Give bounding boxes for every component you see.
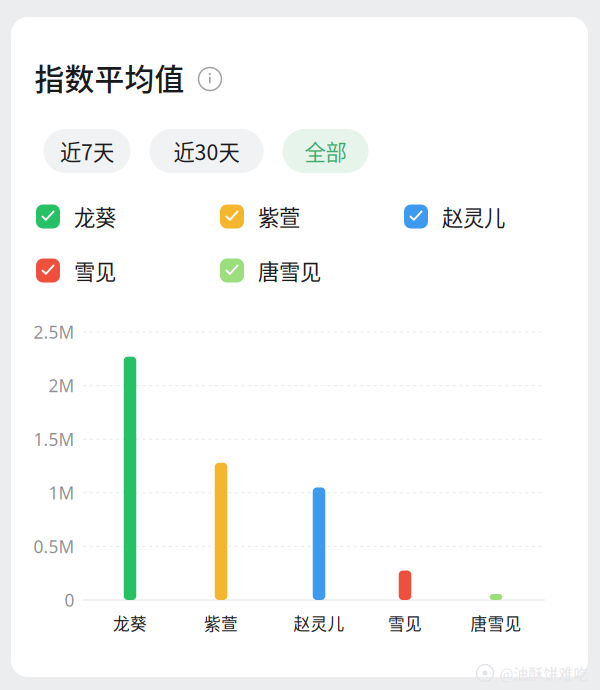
button[interactable]: 赵灵儿 [404, 203, 554, 229]
staticText: 指数平均值 [34, 55, 184, 99]
staticText: 1.5M [33, 428, 74, 451]
staticText: 唐雪见 [470, 611, 521, 635]
staticText: 赵灵儿 [442, 201, 505, 232]
staticText: 全部 [304, 136, 346, 166]
staticText: 0.5M [33, 535, 74, 558]
staticText: 紫萱 [204, 611, 238, 635]
button[interactable]: 紫萱 [220, 203, 404, 229]
staticText: 唐雪见 [258, 255, 321, 286]
staticText: 1M [48, 481, 74, 504]
staticText: 龙葵 [113, 611, 147, 635]
staticText: 2.5M [33, 320, 74, 343]
staticText: @油酥饼难吃 [499, 662, 588, 684]
button[interactable]: 雪见 [36, 257, 220, 283]
staticText: 近7天 [60, 136, 114, 166]
button[interactable]: 唐雪见 [220, 257, 404, 283]
staticText: 近30天 [173, 136, 239, 166]
staticText: 赵灵儿 [293, 611, 344, 635]
staticText: 2M [48, 374, 74, 397]
button[interactable]: 近7天 [43, 129, 130, 173]
staticText: 龙葵 [74, 201, 116, 232]
button[interactable]: 龙葵 [36, 203, 220, 229]
button[interactable]: 说明 [198, 65, 221, 88]
staticText: 紫萱 [258, 201, 300, 232]
staticText: 雪见 [388, 611, 422, 635]
button[interactable]: 全部 [282, 129, 368, 173]
staticText: 0 [64, 588, 74, 611]
staticText: 雪见 [74, 255, 116, 286]
button[interactable]: 近30天 [149, 129, 263, 173]
